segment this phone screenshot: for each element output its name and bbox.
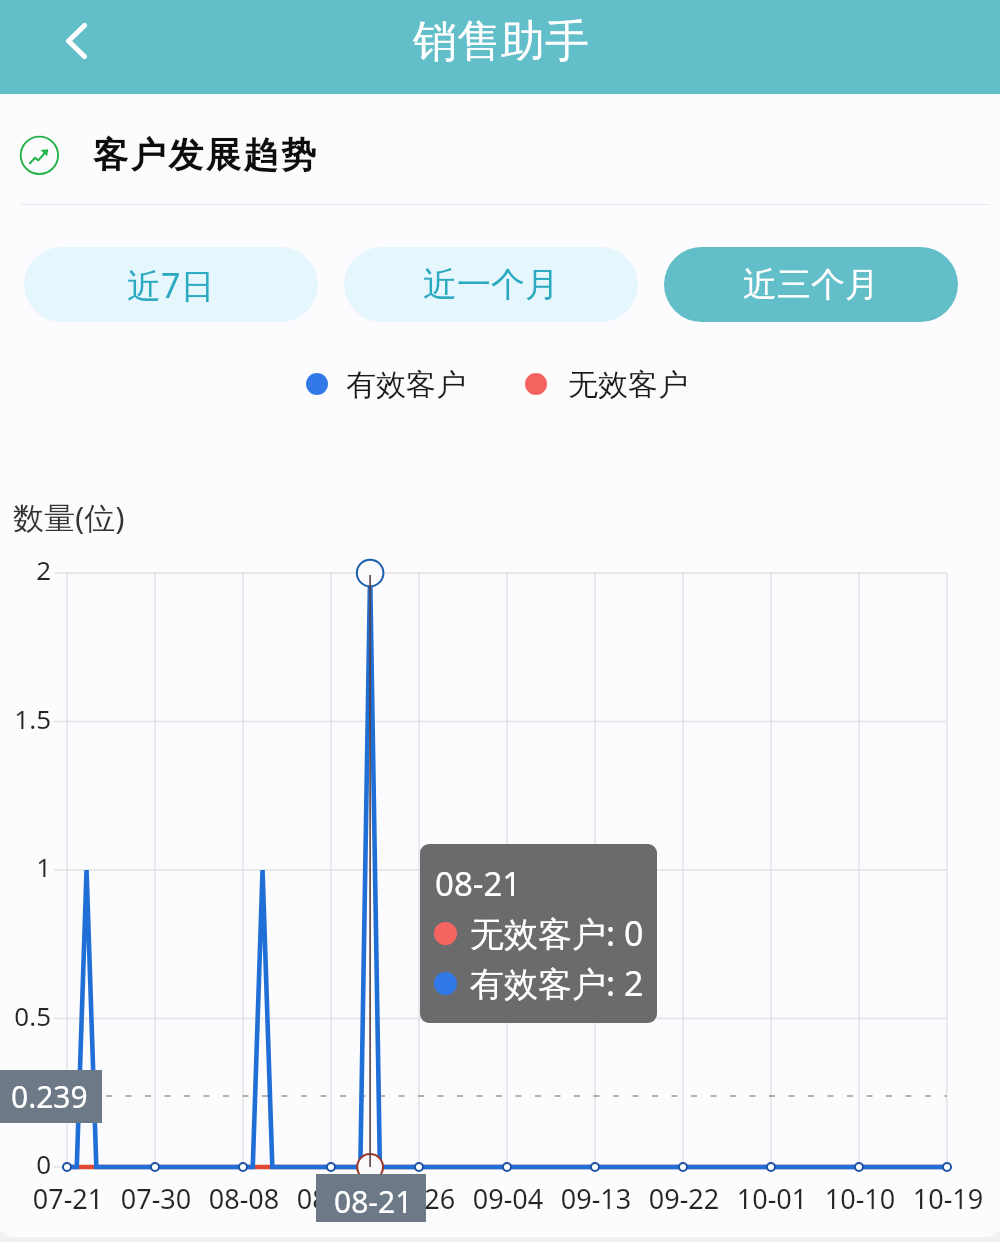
staticText: 09-22 <box>619 1180 749 1217</box>
staticText: 1.5 <box>0 701 51 736</box>
staticText: 08-21 <box>334 1181 413 1222</box>
staticText: 0 <box>0 1146 51 1181</box>
staticText: 1 <box>0 849 51 884</box>
staticText: 07-21 <box>3 1180 133 1217</box>
staticText: 客户发展趋势 <box>93 133 319 177</box>
staticText: 10-19 <box>883 1180 1000 1217</box>
staticText: 无效客户 <box>568 366 688 404</box>
staticText: 2 <box>0 552 51 587</box>
button[interactable]: 近三个月 <box>664 247 958 322</box>
staticText: 0.5 <box>0 998 51 1033</box>
staticText: 08-08 <box>179 1180 309 1217</box>
button[interactable]: 近一个月 <box>344 247 638 322</box>
staticText: 有效客户: 2 <box>470 960 644 1006</box>
staticText: 0.239 <box>11 1076 88 1117</box>
button[interactable]: 有效客户 <box>300 362 472 406</box>
staticText: 数量(位) <box>13 496 125 538</box>
staticText: 有效客户 <box>346 366 466 404</box>
staticText: 近7日 <box>127 262 215 308</box>
staticText: 09-04 <box>443 1180 573 1217</box>
button[interactable]: Back <box>46 7 106 67</box>
staticText: 07-30 <box>91 1180 221 1217</box>
staticText: 10-10 <box>795 1180 925 1217</box>
button[interactable]: 无效客户 <box>519 362 691 406</box>
button[interactable]: 近7日 <box>24 247 318 322</box>
staticText: 08-21 <box>435 861 522 906</box>
staticText: 近三个月 <box>743 263 879 306</box>
staticText: 无效客户: 0 <box>470 910 644 956</box>
staticText: 近一个月 <box>423 263 559 306</box>
staticText: 08-17 <box>267 1180 397 1217</box>
staticText: 08-26 <box>355 1180 485 1217</box>
staticText: 销售助手 <box>413 14 589 69</box>
staticText: 10-01 <box>707 1180 837 1217</box>
staticText: 09-13 <box>531 1180 661 1217</box>
